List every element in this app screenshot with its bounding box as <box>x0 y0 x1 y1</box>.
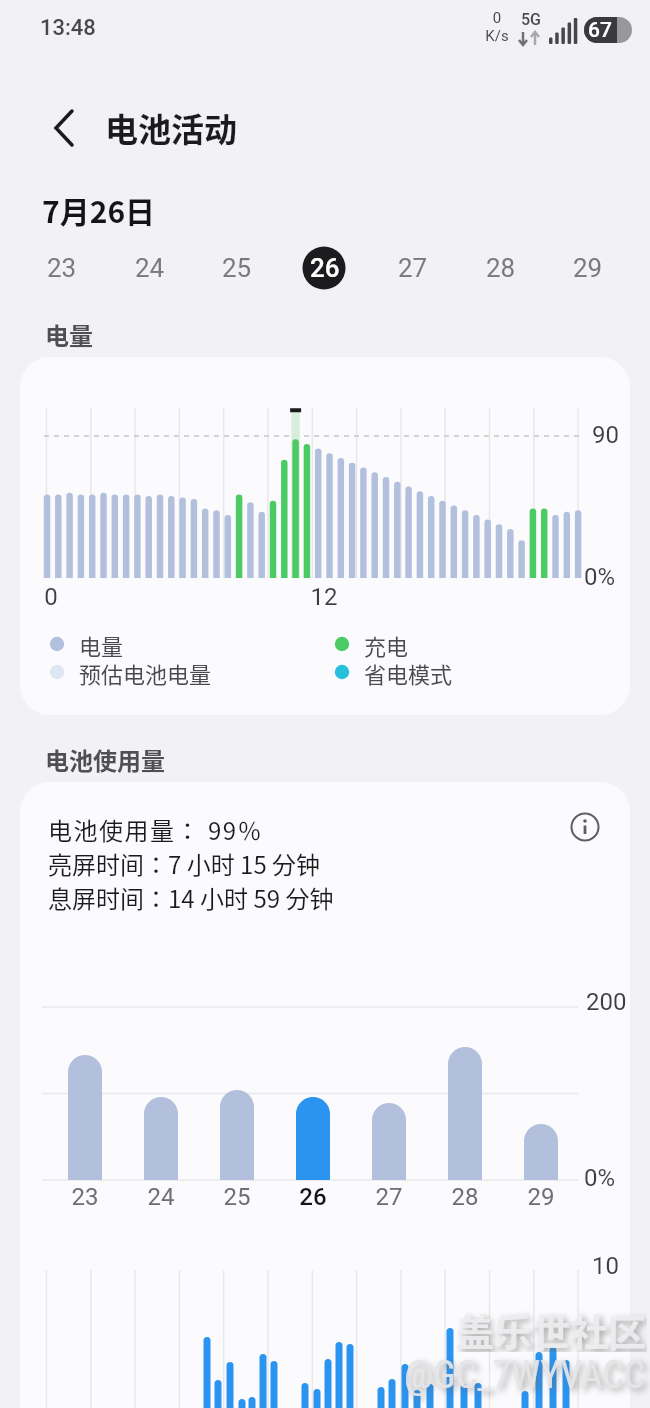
staticText: 90 <box>592 421 619 449</box>
button[interactable]: 24 <box>120 238 180 298</box>
staticText: 25 <box>207 1183 267 1211</box>
staticText: 25 <box>222 253 252 283</box>
staticText: 省电模式 <box>364 657 453 689</box>
staticText: 23 <box>55 1183 115 1211</box>
staticText: 0% <box>584 1164 616 1192</box>
staticText: 电池使用量 <box>45 742 165 777</box>
staticText: 28 <box>435 1183 495 1211</box>
staticText: @GC_7WYVACC <box>404 1353 646 1398</box>
button[interactable]: 26 <box>295 238 355 298</box>
staticText: 充电 <box>364 629 409 661</box>
staticText: 27 <box>398 253 428 283</box>
staticText: 电池活动 <box>105 104 237 152</box>
staticText: 预估电池电量 <box>79 657 212 689</box>
staticText: 0% <box>584 563 616 591</box>
button[interactable]: 25 <box>207 238 267 298</box>
staticText: 28 <box>486 253 516 283</box>
staticText: 10 <box>592 1252 619 1280</box>
staticText: 5G <box>511 10 551 29</box>
staticText: 23 <box>47 253 77 283</box>
button[interactable] <box>40 104 88 152</box>
staticText: K/s <box>467 27 527 45</box>
staticText: 26 <box>310 253 340 283</box>
staticText: 200 <box>586 988 627 1016</box>
staticText: 27 <box>359 1183 419 1211</box>
staticText: 24 <box>131 1183 191 1211</box>
staticText: 12 <box>304 583 344 611</box>
button[interactable]: 23 <box>32 238 92 298</box>
staticText: 13:48 <box>40 15 96 41</box>
staticText: 0 <box>467 9 527 27</box>
staticText: 29 <box>573 253 603 283</box>
button[interactable]: 29 <box>558 238 618 298</box>
button[interactable] <box>565 807 605 847</box>
staticText: 盖乐世社区 <box>456 1302 647 1352</box>
staticText: 电量 <box>45 317 93 352</box>
staticText: 26 <box>283 1183 343 1211</box>
staticText: 电量 <box>79 629 124 661</box>
staticText: 24 <box>135 253 165 283</box>
button[interactable]: 28 <box>471 238 531 298</box>
staticText: 0 <box>31 583 71 611</box>
staticText: 67 <box>575 18 625 43</box>
staticText: 亮屏时间：7 小时 15 分钟 <box>48 846 321 881</box>
staticText: 29 <box>511 1183 571 1211</box>
button[interactable]: 27 <box>383 238 443 298</box>
staticText: 7月26日 <box>42 188 156 231</box>
staticText: 息屏时间：14 小时 59 分钟 <box>48 880 334 915</box>
staticText: 电池使用量： 99％ <box>48 812 264 847</box>
